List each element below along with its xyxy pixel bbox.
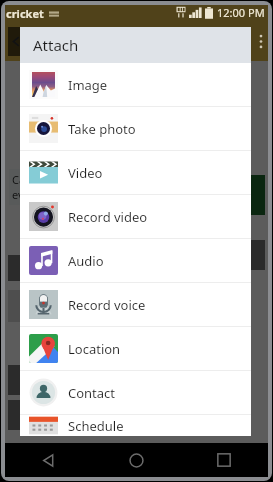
- staticText: 12:00 PM: [217, 5, 265, 20]
- staticText: Record voice: [68, 296, 146, 314]
- button[interactable]: Video: [20, 151, 251, 194]
- button[interactable]: Take photo: [20, 107, 251, 150]
- staticText: Take photo: [68, 120, 136, 138]
- button[interactable]: Image: [20, 63, 251, 106]
- staticText: Contact: [68, 384, 116, 402]
- staticText: Record video: [68, 208, 148, 226]
- staticText: Schedule: [68, 417, 124, 435]
- button[interactable]: Recent apps: [180, 443, 268, 477]
- button[interactable]: Contact: [20, 371, 251, 414]
- staticText: Audio: [68, 252, 104, 270]
- button[interactable]: Schedule: [20, 415, 251, 436]
- button[interactable]: Home: [92, 443, 180, 477]
- button[interactable]: Record voice: [20, 283, 251, 326]
- staticText: Video: [68, 164, 103, 182]
- staticText: Yes, I'll be there around 8 pm: [119, 179, 241, 209]
- staticText: Can you make it to the event tonight?: [12, 172, 129, 202]
- staticText: Attach: [33, 35, 79, 55]
- staticText: Location: [68, 340, 121, 358]
- button[interactable]: Audio: [20, 239, 251, 282]
- button[interactable]: Location: [20, 327, 251, 370]
- button[interactable]: Back: [5, 443, 92, 477]
- staticText: cricket: [6, 6, 44, 21]
- button[interactable]: Record video: [20, 195, 251, 238]
- staticText: Image: [68, 76, 108, 94]
